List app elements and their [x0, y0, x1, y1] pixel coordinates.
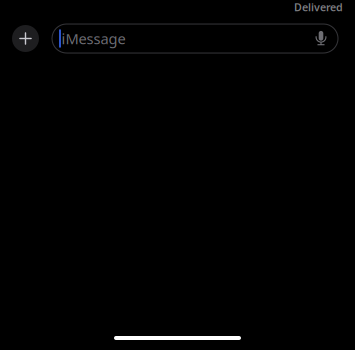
button[interactable]: iMessage [52, 24, 315, 53]
staticText: Delivered [294, 0, 343, 14]
button[interactable]: Add attachment [12, 25, 39, 52]
button[interactable]: Dictate [315, 24, 338, 53]
staticText: iMessage [61, 29, 125, 48]
